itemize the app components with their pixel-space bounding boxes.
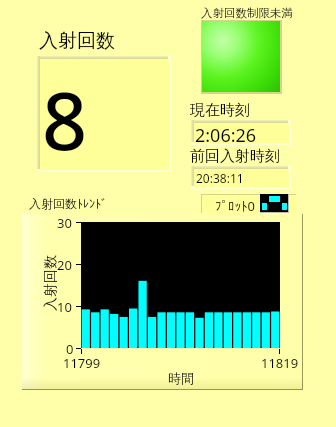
staticText: 2:06:26 (195, 123, 257, 148)
staticText: 入射回数ﾄﾚﾝﾄﾞ (29, 196, 107, 211)
staticText: 現在時刻 (190, 101, 250, 120)
staticText: ﾌﾟﾛｯﾄ0 (215, 197, 255, 215)
staticText: 入射回数 (39, 29, 115, 53)
staticText: 11819 (261, 354, 299, 372)
staticText: 20:38:11 (196, 170, 244, 186)
staticText: 0 (66, 340, 74, 356)
staticText: 前回入射時刻 (190, 147, 280, 166)
staticText: 入射回数制限未満 (201, 6, 293, 20)
staticText: 30 (57, 214, 72, 230)
button[interactable]: ﾌﾟﾛｯﾄ0 (201, 194, 296, 214)
staticText: 時間 (168, 370, 194, 386)
staticText: 11799 (63, 354, 101, 372)
button[interactable]: Status indicator (201, 20, 282, 94)
staticText: 10 (57, 298, 72, 314)
staticText: 入射回数 (42, 255, 58, 311)
staticText: 20 (57, 256, 72, 272)
staticText: 8 (42, 66, 88, 174)
